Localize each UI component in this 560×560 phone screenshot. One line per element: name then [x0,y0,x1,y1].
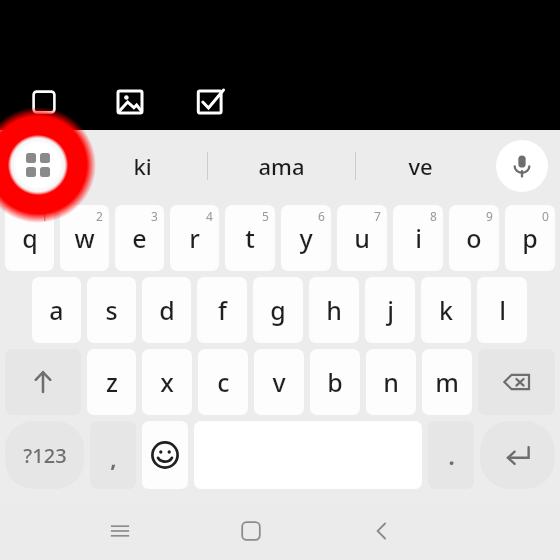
button[interactable]: x [142,349,192,415]
button[interactable]: ama [208,130,355,202]
staticText: l [499,293,506,327]
button[interactable]: p [505,205,555,271]
staticText: j [387,293,394,327]
staticText: q [22,221,38,255]
staticText: i [415,221,422,255]
button[interactable]: q [5,205,54,271]
button[interactable]: Voice input [484,130,560,202]
staticText: t [245,221,255,255]
staticText: 1 [41,208,48,224]
staticText: 2 [96,208,103,224]
button[interactable]: Shift [5,349,81,415]
staticText: , [110,443,117,473]
button[interactable]: i [393,205,443,271]
staticText: . [448,441,455,471]
staticText: ki [133,151,152,181]
button[interactable]: Sticker [22,80,66,124]
staticText: o [466,221,482,255]
staticText: 9 [486,208,493,224]
staticText: m [435,365,459,399]
button[interactable]: k [421,277,471,343]
button[interactable]: Backspace [478,349,555,415]
staticText: w [74,221,95,255]
button[interactable]: . [428,421,474,489]
staticText: c [217,365,230,399]
button[interactable]: y [281,205,331,271]
staticText: 4 [206,208,213,224]
button[interactable]: Home [226,506,276,556]
staticText: k [439,293,453,327]
button[interactable]: j [365,277,415,343]
staticText: ama [258,151,305,181]
button[interactable]: Recents [95,506,145,556]
button[interactable]: Enter [480,421,555,489]
button[interactable]: f [197,277,247,343]
staticText: h [326,293,342,327]
button[interactable]: b [310,349,360,415]
staticText: 5 [262,208,269,224]
staticText: ve [408,151,433,181]
button[interactable]: ki [78,130,207,202]
button[interactable]: r [170,205,219,271]
staticText: u [354,221,370,255]
staticText: 3 [151,208,158,224]
staticText: 0 [542,208,549,224]
button[interactable]: m [422,349,472,415]
staticText: 8 [430,208,437,224]
button[interactable]: s [87,277,136,343]
staticText: 6 [318,208,325,224]
button[interactable]: l [477,277,527,343]
button[interactable]: v [254,349,304,415]
staticText: z [106,365,118,399]
button[interactable]: , [90,421,136,489]
button[interactable]: a [32,277,81,343]
button[interactable]: Emoji [142,421,188,489]
staticText: ?123 [23,442,67,469]
staticText: y [299,221,313,255]
staticText: b [327,365,343,399]
button[interactable]: ?123 [5,421,84,489]
button[interactable]: o [449,205,499,271]
staticText: s [105,293,118,327]
staticText: r [189,221,200,255]
staticText: e [132,221,147,255]
button[interactable]: t [225,205,275,271]
staticText: x [160,365,174,399]
button[interactable]: h [309,277,359,343]
staticText: d [159,293,175,327]
button[interactable]: Checklist [188,80,232,124]
staticText: n [383,365,399,399]
button[interactable]: ve [356,130,484,202]
staticText: 7 [374,208,381,224]
button[interactable]: Back [357,506,407,556]
button[interactable]: w [60,205,109,271]
staticText: g [270,293,286,327]
button[interactable]: Gallery [108,80,152,124]
button[interactable]: z [87,349,136,415]
button[interactable]: e [115,205,164,271]
button[interactable]: n [366,349,416,415]
staticText: f [218,293,227,327]
button[interactable]: u [337,205,387,271]
button[interactable]: d [142,277,191,343]
button[interactable]: g [253,277,303,343]
staticText: v [272,365,286,399]
button[interactable]: c [198,349,248,415]
staticText: a [49,293,64,327]
staticText: p [522,221,538,255]
